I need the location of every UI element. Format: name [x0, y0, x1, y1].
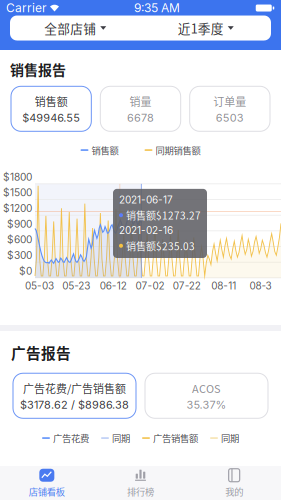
button[interactable]: 排行榜 — [94, 468, 187, 498]
staticText: 08-3 — [250, 280, 272, 292]
staticText: 07-02 — [135, 280, 164, 292]
button[interactable]: 全部店铺 — [10, 15, 140, 40]
staticText: $900 — [7, 218, 32, 230]
button[interactable]: ACOS — [145, 373, 268, 418]
staticText: 订单量 — [213, 93, 246, 109]
button[interactable]: 销量 — [100, 86, 181, 131]
button[interactable]: 我的 — [187, 468, 281, 498]
staticText: 销售额 — [35, 93, 68, 109]
button[interactable]: 订单量 — [190, 86, 270, 131]
staticText: 2021-06-17 — [119, 194, 173, 206]
button[interactable]: 销售额 — [11, 86, 91, 131]
staticText: 05-03 — [25, 280, 54, 292]
staticText: 广告报告 — [11, 342, 71, 363]
staticText: 同期销售额 — [155, 143, 200, 157]
staticText: 35.37% — [186, 398, 226, 411]
staticText: $0 — [19, 265, 32, 277]
staticText: 广告销售额 — [153, 431, 198, 445]
staticText: 近1季度 — [178, 19, 224, 37]
staticText: 销量 — [129, 93, 151, 109]
staticText: 06-12 — [100, 280, 127, 292]
staticText: ACOS — [192, 380, 221, 396]
button[interactable]: 店铺看板 — [0, 468, 94, 498]
button[interactable]: 近1季度 — [140, 15, 271, 40]
staticText: 2021-02-16 — [119, 224, 173, 236]
staticText: 广告花费 — [53, 431, 89, 445]
staticText: 我的 — [225, 485, 243, 498]
staticText: $1500 — [3, 186, 32, 199]
button[interactable]: 广告花费/广告销售额 — [13, 373, 136, 418]
staticText: 08-11 — [211, 280, 236, 292]
staticText: 9:35 AM — [134, 1, 180, 15]
staticText: 销售额 — [91, 143, 118, 157]
staticText: 同期 — [112, 431, 130, 445]
staticText: 销售额$235.03 — [126, 238, 195, 253]
staticText: $49946.55 — [22, 111, 80, 124]
staticText: 6678 — [127, 111, 154, 124]
staticText: 07-22 — [173, 280, 201, 292]
staticText: $3178.62 / $8986.38 — [20, 398, 129, 411]
staticText: Carrier — [6, 1, 47, 15]
staticText: 排行榜 — [127, 485, 154, 498]
staticText: 6503 — [216, 111, 244, 124]
staticText: 05-23 — [62, 280, 90, 292]
staticText: $1200 — [3, 202, 32, 214]
staticText: 全部店铺 — [44, 19, 96, 37]
staticText: $300 — [7, 249, 32, 261]
staticText: 销售报告 — [10, 59, 66, 79]
staticText: $600 — [7, 233, 32, 246]
staticText: $1800 — [3, 171, 32, 183]
staticText: 同期 — [221, 431, 239, 445]
staticText: 店铺看板 — [29, 485, 65, 498]
staticText: 销售额$1273.27 — [126, 208, 201, 222]
staticText: 广告花费/广告销售额 — [23, 380, 126, 396]
